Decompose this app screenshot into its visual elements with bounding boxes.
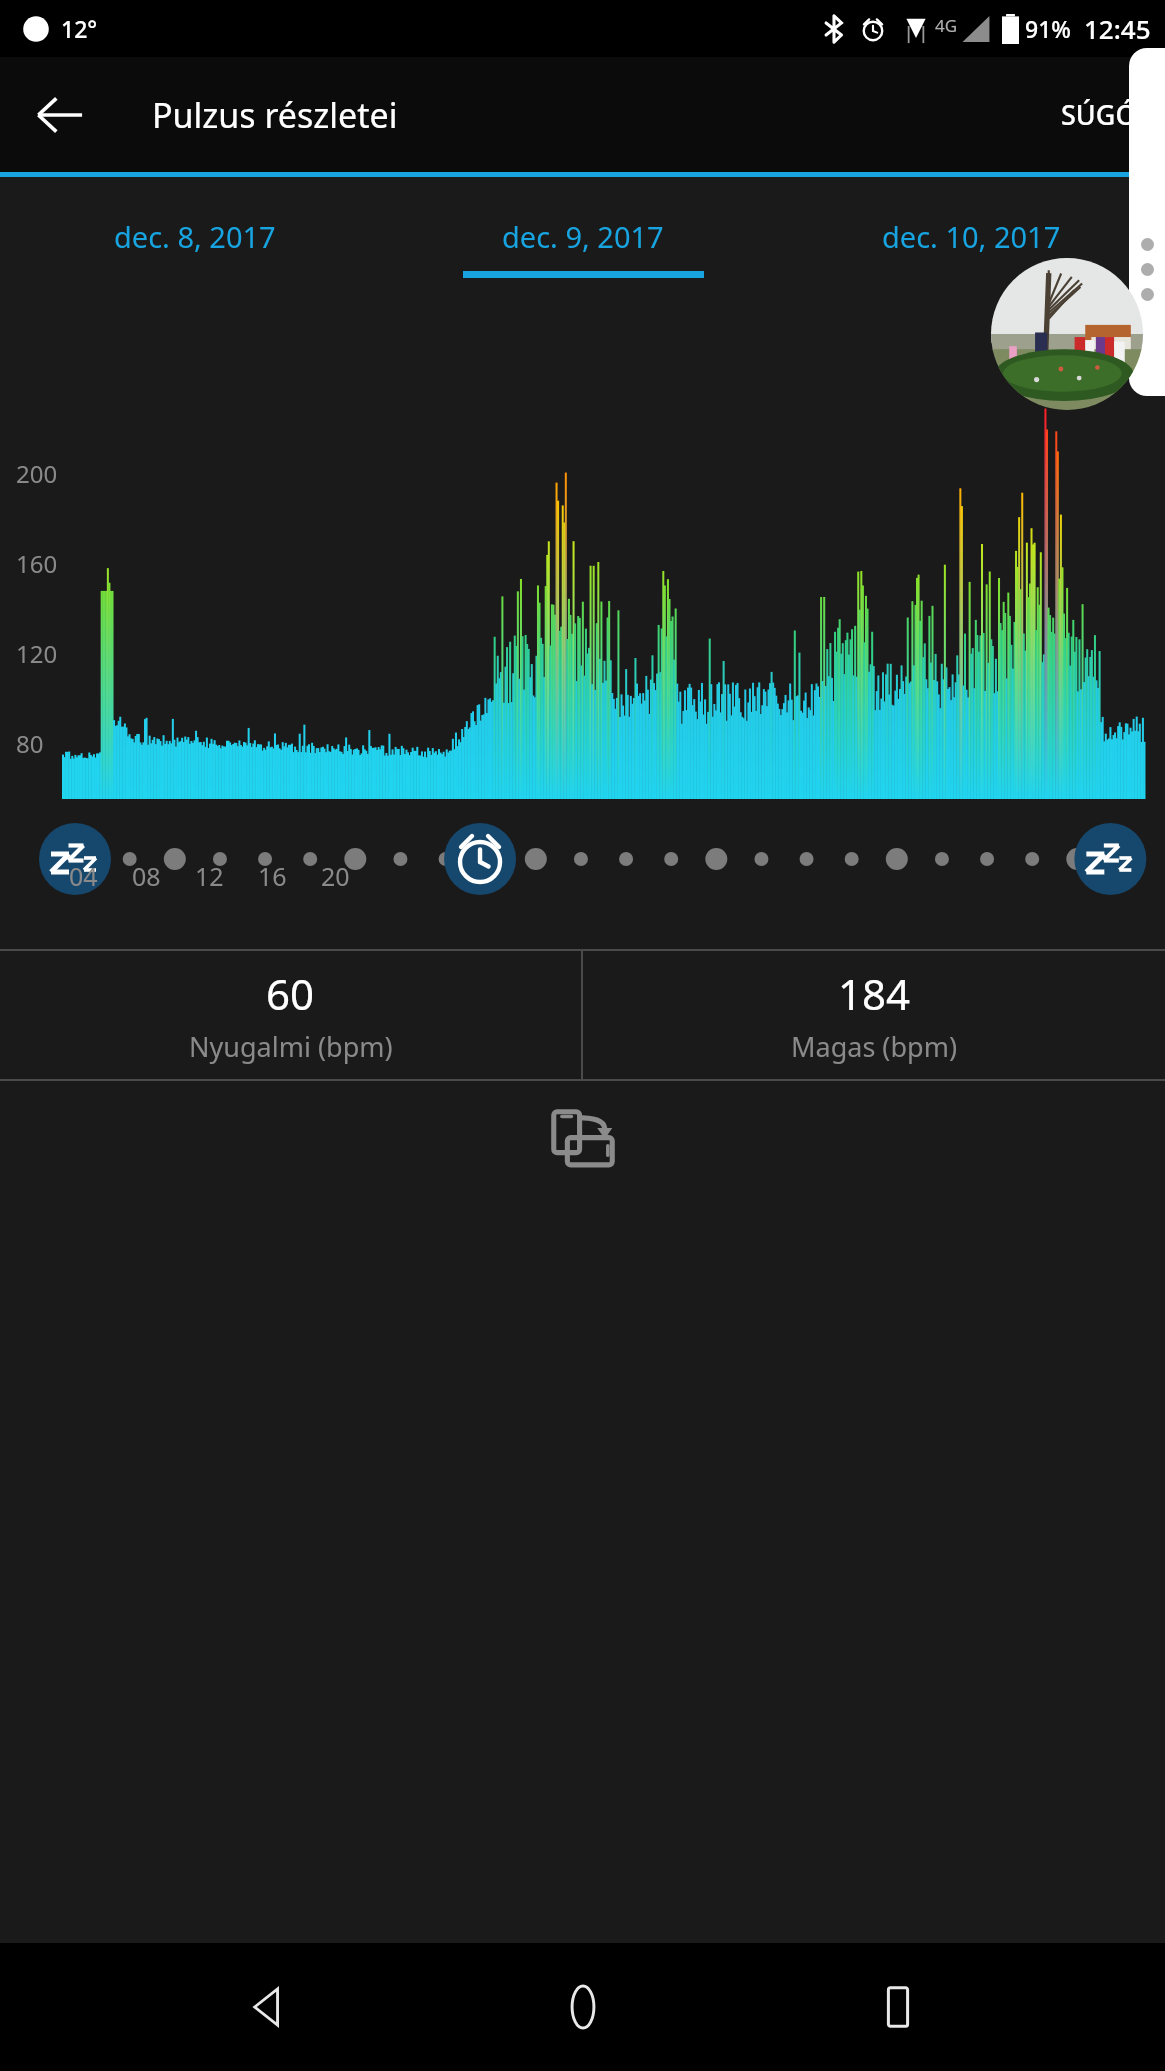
staticText: 08	[132, 859, 161, 893]
button[interactable]: Chat head	[991, 258, 1143, 410]
button[interactable]: dec. 10, 2017	[777, 177, 1165, 289]
button[interactable]: dec. 8, 2017	[0, 177, 389, 289]
staticText: 4G	[935, 14, 958, 37]
button[interactable]: SÚGÓ	[1045, 84, 1153, 145]
button[interactable]: Home	[535, 1959, 631, 2055]
staticText: Magas (bpm)	[791, 1028, 957, 1065]
staticText: 04	[69, 859, 98, 893]
staticText: 12	[195, 859, 224, 893]
button[interactable]: 60	[0, 951, 581, 1079]
staticText: 120	[16, 637, 58, 670]
staticText: Pulzus részletei	[152, 92, 398, 138]
staticText: Nyugalmi (bpm)	[189, 1028, 393, 1065]
staticText: 16	[258, 859, 287, 893]
button[interactable]: Back	[22, 77, 98, 153]
staticText: 20	[321, 859, 350, 893]
staticText: 91%	[1025, 13, 1071, 44]
staticText: dec. 10, 2017	[882, 217, 1061, 256]
staticText: 184	[838, 965, 911, 1022]
staticText: dec. 8, 2017	[114, 217, 276, 256]
staticText: 60	[266, 965, 315, 1022]
button[interactable]: dec. 9, 2017	[389, 177, 777, 289]
staticText: 80	[16, 727, 44, 760]
button[interactable]: Rotate device	[541, 1097, 625, 1181]
staticText: 12:45	[1084, 11, 1151, 46]
staticText: 200	[16, 457, 58, 490]
staticText: SÚGÓ	[1061, 96, 1137, 133]
staticText: 160	[16, 547, 58, 580]
button[interactable]: 184	[583, 951, 1165, 1079]
button[interactable]: Back	[219, 1959, 315, 2055]
button[interactable]: Recents	[850, 1959, 946, 2055]
button[interactable]: Chat menu	[1129, 48, 1165, 396]
staticText: dec. 9, 2017	[502, 217, 664, 256]
staticText: 12°	[61, 13, 98, 44]
